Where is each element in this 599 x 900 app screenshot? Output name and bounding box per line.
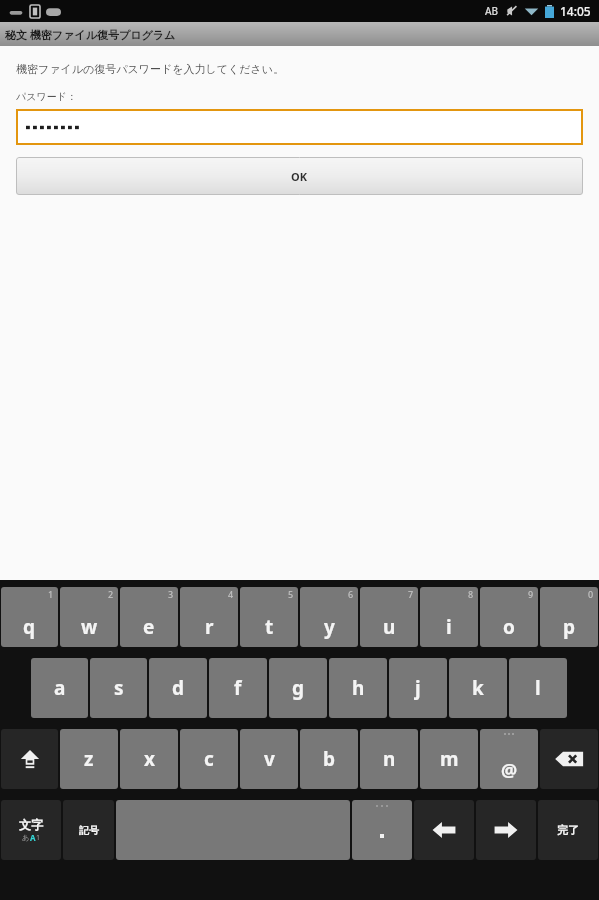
button[interactable]: @ — [480, 729, 538, 789]
button[interactable]: 0 — [540, 587, 598, 647]
staticText: p — [563, 614, 576, 640]
button[interactable]: Shift — [1, 729, 58, 789]
button[interactable]: n — [360, 729, 418, 789]
staticText: h — [352, 675, 365, 701]
button[interactable]: Cursor right — [476, 800, 536, 860]
button[interactable]: Backspace — [540, 729, 598, 789]
button[interactable]: 完了 — [538, 800, 598, 860]
staticText: b — [323, 746, 336, 772]
staticText: e — [143, 614, 155, 640]
staticText: パスワード： — [16, 90, 77, 103]
staticText: i — [446, 614, 452, 640]
staticText: 0 — [588, 588, 594, 600]
staticText: AB — [485, 4, 499, 18]
button[interactable]: 8 — [420, 587, 478, 647]
staticText: 3 — [168, 588, 174, 600]
button[interactable]: b — [300, 729, 358, 789]
staticText: 機密ファイルの復号パスワードを入力してください。 — [16, 62, 285, 76]
button[interactable]: d — [149, 658, 207, 718]
staticText: s — [114, 675, 124, 701]
button[interactable]: c — [180, 729, 238, 789]
staticText: j — [415, 675, 421, 701]
staticText: f — [234, 675, 242, 701]
staticText: 2 — [108, 588, 114, 600]
staticText: m — [440, 746, 459, 772]
button[interactable]: k — [449, 658, 507, 718]
staticText: t — [265, 614, 274, 640]
button[interactable]: x — [120, 729, 178, 789]
staticText: 1 — [48, 588, 54, 600]
staticText: o — [503, 614, 515, 640]
staticText: 5 — [288, 588, 294, 600]
staticText: u — [383, 614, 396, 640]
button[interactable]: 7 — [360, 587, 418, 647]
button[interactable]: a — [31, 658, 88, 718]
staticText: 8 — [468, 588, 474, 600]
staticText: 1 — [36, 833, 41, 843]
staticText: z — [84, 746, 94, 772]
staticText: k — [472, 675, 484, 701]
button[interactable]: 記号 — [63, 800, 114, 860]
staticText: 文字 — [19, 817, 43, 832]
staticText: y — [324, 614, 335, 640]
staticText: 9 — [528, 588, 534, 600]
staticText: 6 — [348, 588, 354, 600]
button[interactable]: z — [60, 729, 118, 789]
staticText: あ — [22, 833, 30, 842]
staticText: OK — [291, 169, 308, 184]
button[interactable]: g — [269, 658, 327, 718]
staticText: 4 — [228, 588, 234, 600]
button[interactable]: OK — [16, 157, 583, 195]
button[interactable]: l — [509, 658, 567, 718]
staticText: 完了 — [557, 823, 579, 837]
button[interactable]: 5 — [240, 587, 298, 647]
staticText: w — [81, 614, 98, 640]
button[interactable]: m — [420, 729, 478, 789]
button[interactable]: s — [90, 658, 147, 718]
staticText: x — [144, 746, 155, 772]
button[interactable]: 4 — [180, 587, 238, 647]
staticText: q — [23, 614, 36, 640]
button[interactable]: 2 — [60, 587, 118, 647]
staticText: r — [205, 614, 214, 640]
staticText: 7 — [408, 588, 414, 600]
button[interactable]: v — [240, 729, 298, 789]
staticText: 記号 — [79, 824, 99, 837]
button[interactable]: 1 — [1, 587, 58, 647]
button[interactable] — [16, 109, 583, 145]
staticText: @ — [501, 758, 518, 783]
button[interactable]: 9 — [480, 587, 538, 647]
button[interactable]: h — [329, 658, 387, 718]
staticText: n — [383, 746, 396, 772]
staticText: 秘文 機密ファイル復号プログラム — [5, 27, 176, 42]
button[interactable]: j — [389, 658, 447, 718]
staticText: 14:05 — [560, 3, 591, 19]
staticText: a — [54, 675, 66, 701]
staticText: c — [204, 746, 214, 772]
button[interactable]: 3 — [120, 587, 178, 647]
button[interactable]: Cursor left — [414, 800, 474, 860]
button[interactable]: 文字 — [1, 800, 61, 860]
staticText: v — [264, 746, 275, 772]
button[interactable]: Period — [352, 800, 412, 860]
staticText: A — [30, 832, 36, 843]
staticText: d — [172, 675, 185, 701]
button[interactable]: f — [209, 658, 267, 718]
staticText: l — [535, 675, 541, 701]
button[interactable]: 6 — [300, 587, 358, 647]
staticText: g — [292, 675, 305, 701]
